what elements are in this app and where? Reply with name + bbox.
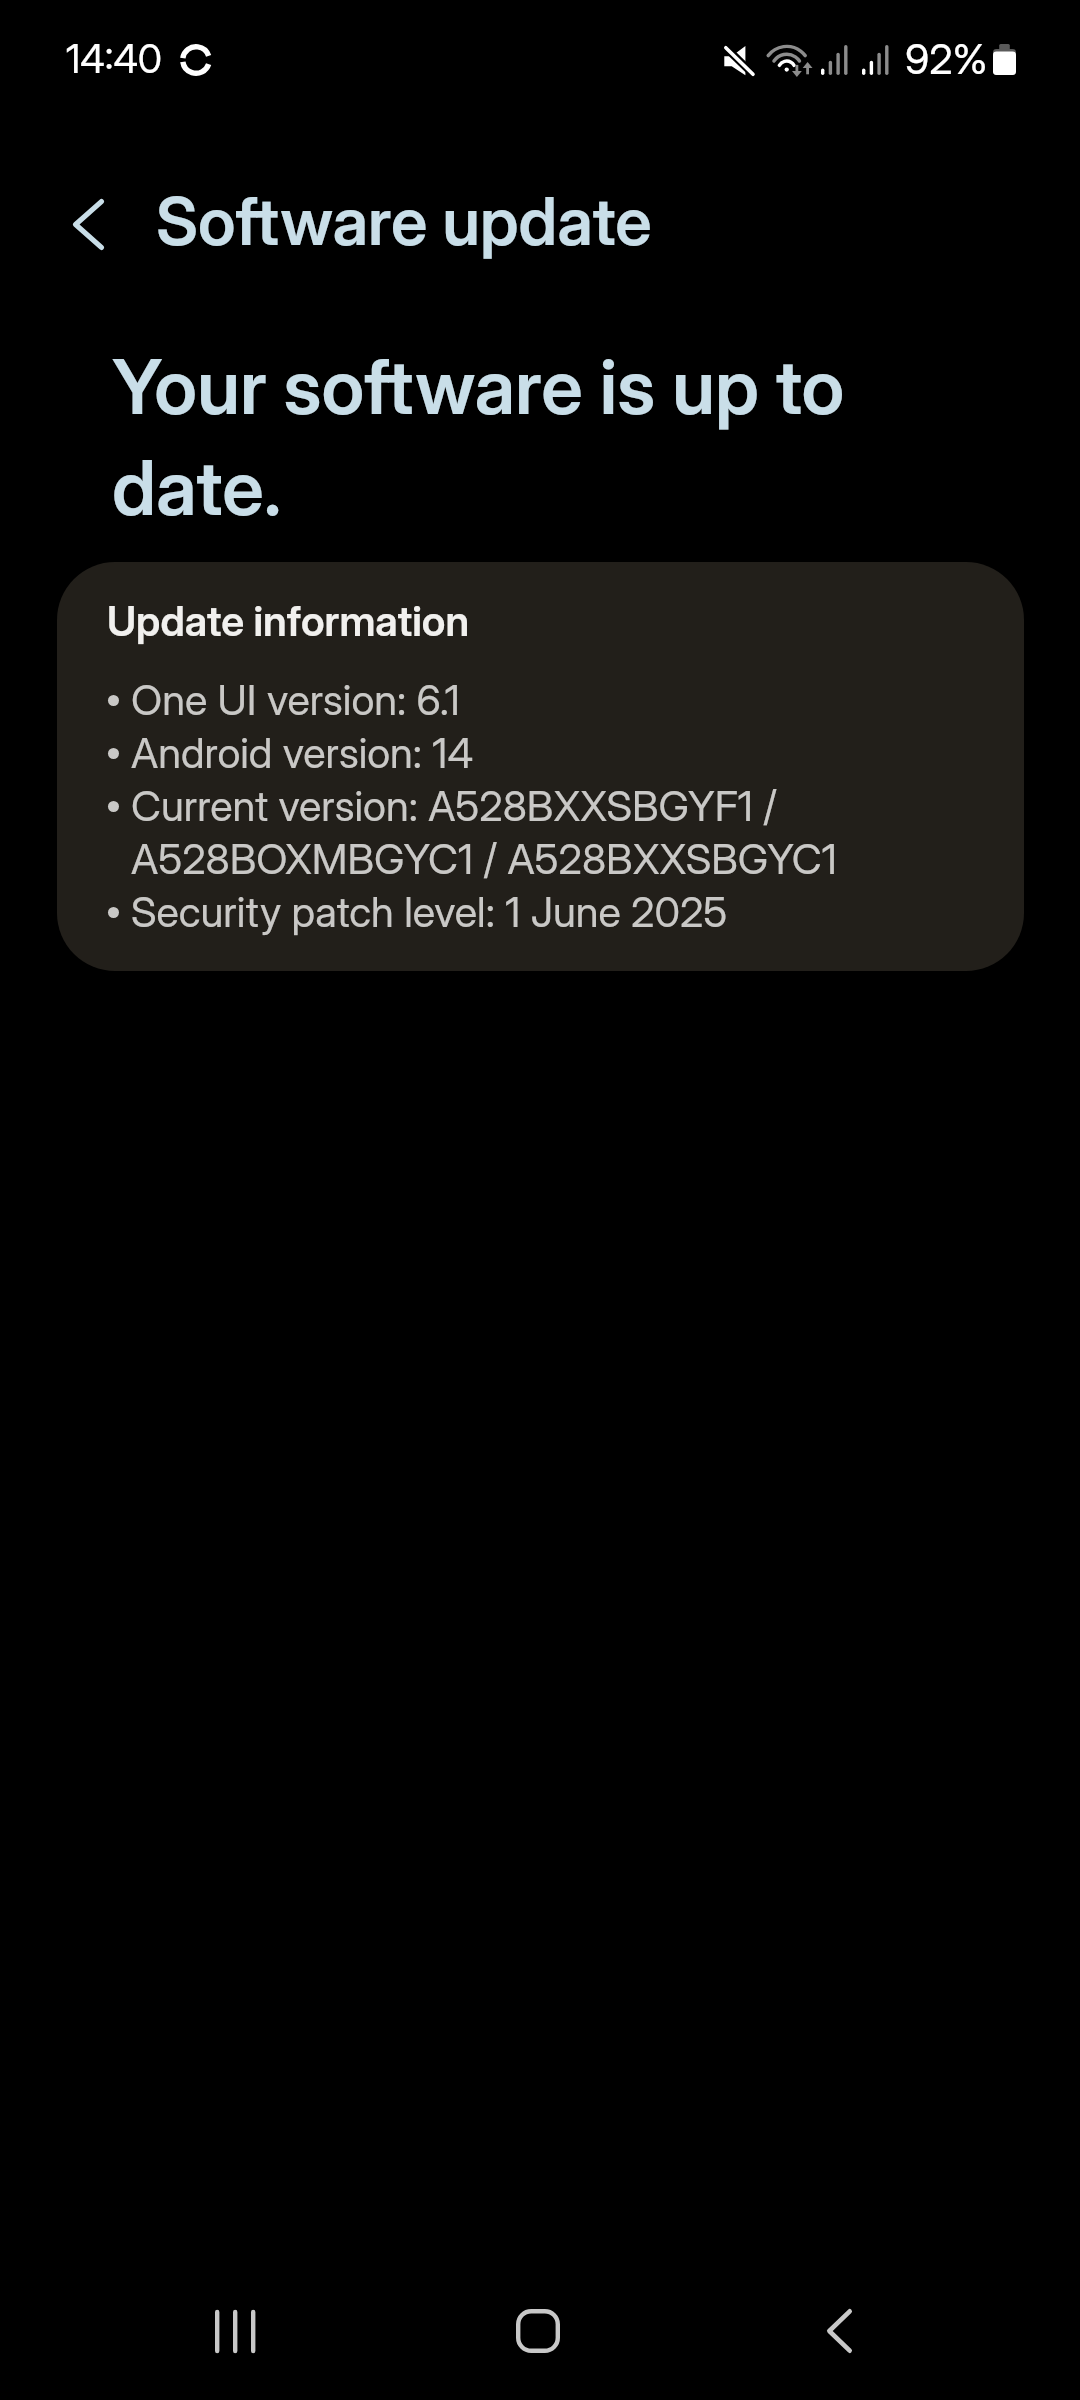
staticText: 14:40 [66, 35, 163, 83]
button[interactable]: Back [779, 2271, 899, 2391]
button[interactable]: Recent apps [176, 2271, 296, 2391]
button[interactable]: Home [478, 2271, 598, 2391]
staticText: Security patch level: 1 June 2025 [131, 885, 728, 938]
button[interactable]: Navigate up [34, 160, 142, 288]
staticText: 92% [905, 34, 988, 84]
staticText: Software update [156, 181, 652, 261]
staticText: Update information [107, 596, 470, 646]
staticText: Current version: A528BXXSBGYF1 / A528BOX… [131, 779, 1024, 885]
staticText: Your software is up to date. [112, 333, 912, 535]
staticText: One UI version: 6.1 [131, 673, 460, 726]
staticText: Android version: 14 [131, 726, 474, 779]
